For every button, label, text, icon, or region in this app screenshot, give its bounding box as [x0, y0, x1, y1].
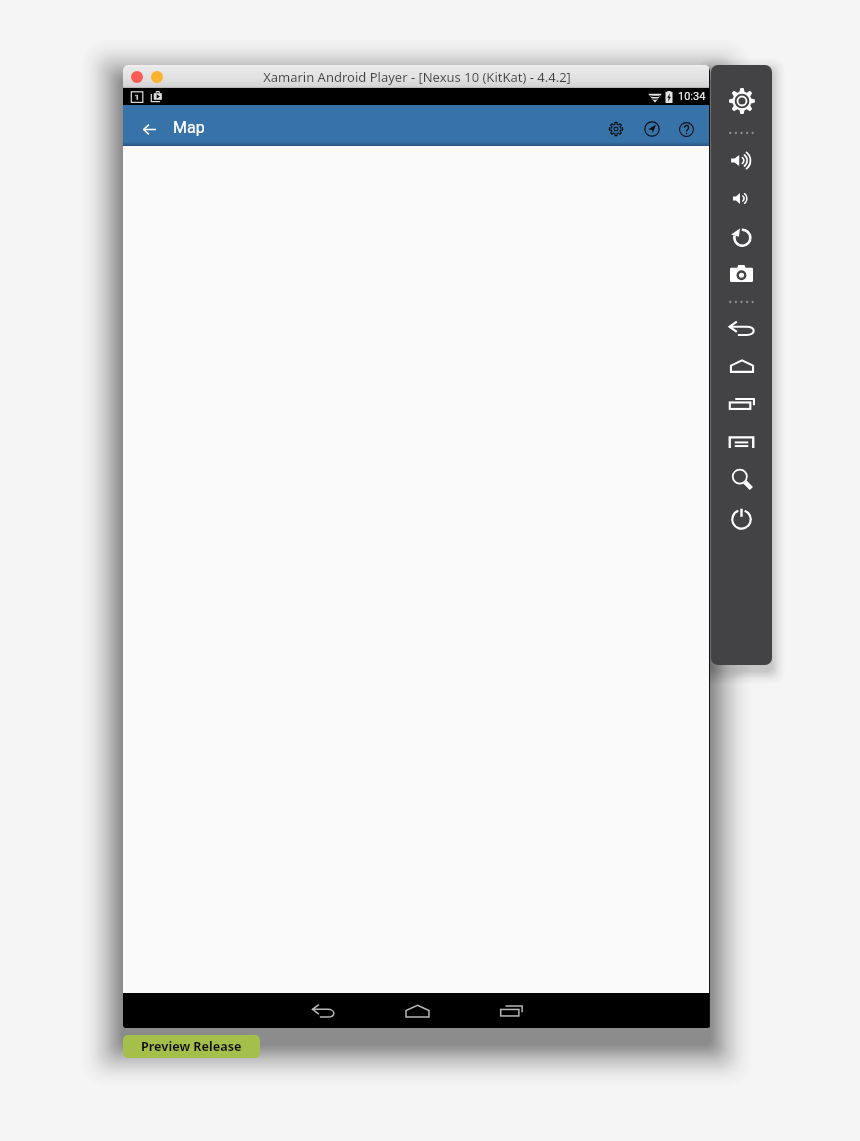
- button[interactable]: Settings: [711, 84, 772, 118]
- button[interactable]: Back: [288, 993, 358, 1028]
- button[interactable]: Close window: [131, 71, 143, 83]
- button[interactable]: Volume up: [711, 143, 772, 177]
- button[interactable]: Screenshot: [711, 256, 772, 290]
- staticText: Preview Release: [141, 1038, 242, 1055]
- button[interactable]: Preview Release: [123, 1035, 260, 1058]
- button[interactable]: Search: [711, 461, 772, 495]
- button[interactable]: Home: [711, 349, 772, 383]
- button[interactable]: Rotate: [711, 219, 772, 253]
- button[interactable]: Recent apps: [711, 386, 772, 420]
- button[interactable]: Help: [669, 112, 703, 146]
- button[interactable]: Home: [382, 993, 452, 1028]
- staticText: Map: [173, 118, 205, 137]
- button[interactable]: Recent apps: [476, 993, 546, 1028]
- button[interactable]: Minimize window: [151, 71, 163, 83]
- button[interactable]: Back: [711, 311, 772, 345]
- staticText: 10:34: [678, 90, 706, 103]
- button[interactable]: Power: [711, 501, 772, 535]
- button[interactable]: My location: [635, 112, 669, 146]
- button[interactable]: Settings: [599, 112, 633, 146]
- button[interactable]: Volume down: [711, 181, 772, 215]
- button[interactable]: Navigate up: [132, 112, 166, 146]
- button[interactable]: Menu: [711, 425, 772, 459]
- staticText: Xamarin Android Player - [Nexus 10 (KitK…: [263, 68, 571, 86]
